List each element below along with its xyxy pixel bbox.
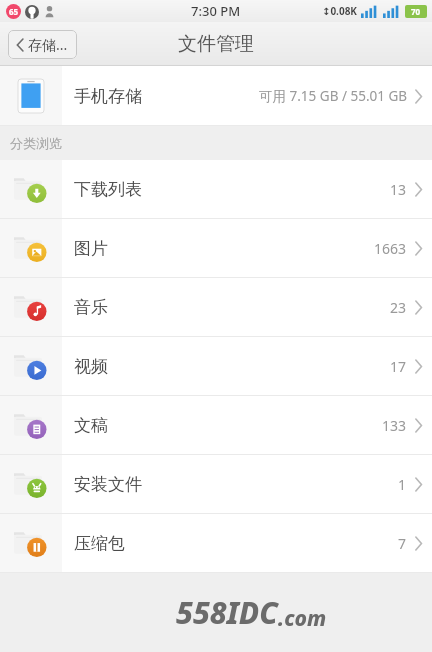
staticText: 17 bbox=[390, 357, 407, 376]
button[interactable]: 音乐 bbox=[0, 278, 432, 337]
other: Open bbox=[415, 537, 422, 550]
button[interactable]: 视频 bbox=[0, 337, 432, 396]
other: Open bbox=[415, 242, 422, 255]
button[interactable]: 安装文件 bbox=[0, 455, 432, 514]
staticText: ↕0.08K bbox=[322, 4, 357, 18]
button[interactable]: 下载列表 bbox=[0, 160, 432, 219]
staticText: 7 bbox=[398, 534, 407, 553]
other: Open bbox=[415, 419, 422, 432]
other: Open bbox=[415, 301, 422, 314]
staticText: 7:30 PM bbox=[191, 2, 241, 20]
other: Open bbox=[415, 183, 422, 196]
button[interactable]: 压缩包 bbox=[0, 514, 432, 573]
staticText: 图片 bbox=[74, 238, 108, 259]
other: Open bbox=[415, 360, 422, 373]
button[interactable]: 存储... bbox=[8, 30, 77, 59]
staticText: 13 bbox=[390, 180, 407, 199]
staticText: 音乐 bbox=[74, 297, 108, 318]
button[interactable]: 手机存储 bbox=[0, 66, 432, 126]
staticText: 文件管理 bbox=[178, 32, 254, 56]
staticText: 文稿 bbox=[74, 415, 108, 436]
staticText: 65 bbox=[9, 6, 19, 17]
staticText: 安装文件 bbox=[74, 474, 142, 495]
button[interactable]: 图片 bbox=[0, 219, 432, 278]
staticText: .com bbox=[278, 604, 327, 633]
staticText: 1663 bbox=[374, 239, 407, 258]
staticText: 分类浏览 bbox=[10, 135, 62, 151]
staticText: 133 bbox=[382, 416, 407, 435]
staticText: 视频 bbox=[74, 356, 108, 377]
staticText: 70 bbox=[411, 6, 421, 17]
staticText: 手机存储 bbox=[74, 86, 142, 107]
staticText: 558IDC bbox=[176, 592, 278, 633]
staticText: 1 bbox=[398, 475, 407, 494]
other: Open bbox=[415, 478, 422, 491]
button[interactable]: 文稿 bbox=[0, 396, 432, 455]
staticText: 存储... bbox=[28, 35, 68, 54]
staticText: 可用 7.15 GB / 55.01 GB bbox=[259, 87, 408, 105]
staticText: 23 bbox=[390, 298, 407, 317]
staticText: 下载列表 bbox=[74, 179, 142, 200]
staticText: 压缩包 bbox=[74, 533, 125, 554]
other: Open bbox=[415, 90, 422, 103]
